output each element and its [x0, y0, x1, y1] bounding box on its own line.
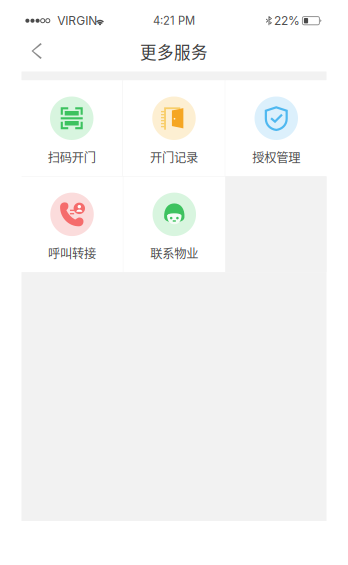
staticText: 扫码开门	[48, 148, 96, 166]
staticText: 开门记录	[150, 148, 198, 166]
staticText: 更多服务	[140, 39, 208, 63]
button[interactable]: 开门记录	[123, 80, 225, 176]
button[interactable]: 呼叫转接	[21, 177, 123, 272]
button[interactable]: 授权管理	[225, 80, 327, 176]
staticText: VIRGIN	[57, 13, 97, 28]
button[interactable]: 联系物业	[123, 177, 225, 272]
staticText: 呼叫转接	[48, 244, 96, 262]
staticText: 联系物业	[150, 244, 198, 262]
staticText: 22%	[274, 13, 300, 28]
staticText: 授权管理	[252, 148, 300, 166]
staticText: 4:21 PM	[153, 14, 195, 27]
button[interactable]: Back	[21, 35, 52, 68]
button[interactable]: 扫码开门	[21, 80, 123, 176]
